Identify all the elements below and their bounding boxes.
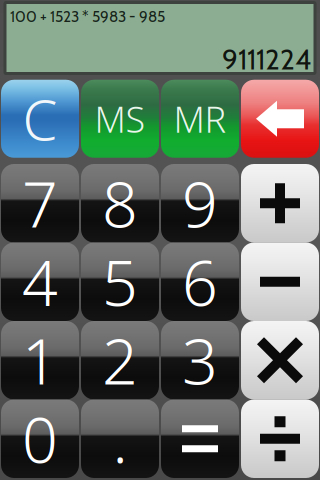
staticText: MR — [173, 95, 226, 143]
staticText: 5 — [102, 240, 138, 323]
staticText: 9 — [182, 162, 218, 245]
staticText: 3 — [182, 319, 218, 402]
button[interactable]: 8 — [81, 164, 159, 242]
staticText: 1 — [22, 319, 58, 402]
button[interactable]: 9 — [161, 164, 239, 242]
staticText: 100 + 1523 * 5983 - 985 — [10, 7, 165, 26]
staticText: 6 — [182, 240, 218, 323]
button[interactable]: Plus — [241, 164, 319, 242]
button[interactable]: 7 — [1, 164, 79, 242]
button[interactable]: 6 — [161, 242, 239, 321]
button[interactable]: Backspace — [241, 80, 319, 158]
button[interactable]: Divide — [241, 399, 319, 478]
button[interactable]: 2 — [81, 321, 159, 399]
staticText: . — [112, 397, 127, 480]
button[interactable]: MS — [81, 80, 159, 158]
button[interactable]: C — [1, 80, 79, 158]
button[interactable]: 1 — [1, 321, 79, 399]
button[interactable]: 5 — [81, 242, 159, 321]
staticText: 7 — [22, 162, 58, 245]
staticText: C — [22, 82, 57, 156]
staticText: MS — [94, 95, 145, 143]
button[interactable]: . — [81, 399, 159, 478]
button[interactable]: Multiply — [241, 321, 319, 399]
staticText: 4 — [22, 240, 58, 323]
button[interactable]: 4 — [1, 242, 79, 321]
button[interactable]: MR — [161, 80, 239, 158]
staticText: 9111224 — [222, 42, 311, 76]
staticText: 2 — [102, 319, 138, 402]
button[interactable]: 0 — [1, 399, 79, 478]
staticText: 8 — [102, 162, 138, 245]
button[interactable]: 3 — [161, 321, 239, 399]
staticText: 0 — [22, 397, 58, 480]
button[interactable]: Equals — [161, 399, 239, 478]
button[interactable]: Minus — [241, 242, 319, 321]
